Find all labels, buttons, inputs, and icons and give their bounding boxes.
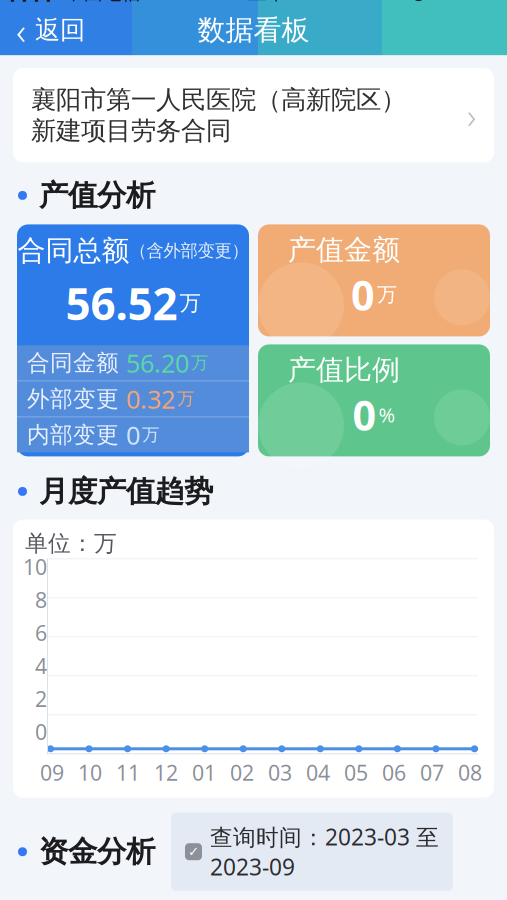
staticText: 数据看板 [197,13,309,47]
staticText: ‹ [16,5,26,55]
staticText: 万 [177,388,194,409]
button[interactable]: 襄阳市第一人民医院（高新院区）新建项目劳务合同 [13,68,494,162]
staticText: 返回 [35,15,85,46]
staticText: 06 [382,758,406,787]
staticText: 查询时间：2023-03 至 2023-09 [210,822,439,882]
staticText: 单位：万 [25,529,117,557]
staticText: 合同金额 [27,349,119,377]
staticText: 56.52 [65,274,177,332]
staticText: 外部变更 [27,385,119,413]
staticText: 4 [35,652,47,680]
staticText: 万 [142,424,159,445]
staticText: 10 [78,758,102,787]
staticText: 月度产值趋势 [39,473,213,509]
staticText: 12 [154,758,178,787]
staticText: ◉ 97% [411,0,466,4]
staticText: 内部变更 [27,421,119,449]
staticText: 上午 10:38 [247,0,339,5]
staticText: 8 [35,586,47,614]
staticText: （含外部变更） [129,240,248,261]
staticText: 0 [119,418,140,452]
staticText: 02 [230,758,254,787]
staticText: 产值分析 [39,177,155,213]
staticText: 08 [458,758,482,787]
staticText: 资金分析 [39,834,155,870]
staticText: 0.32 [119,382,175,416]
staticText: 04 [306,758,330,787]
staticText: 0 [35,718,47,746]
staticText: % [378,401,395,428]
staticText: 6 [35,619,47,647]
staticText: 03 [268,758,292,787]
staticText: 0 [351,267,375,322]
staticText: 56.20 [119,346,189,380]
button[interactable]: ✓ [171,813,453,891]
staticText: 09 [40,758,64,787]
staticText: 01 [192,758,216,787]
staticText: 万 [191,352,208,373]
staticText: 中国电信 4G [59,0,176,5]
staticText: ▎▎▎▎ [11,0,59,1]
staticText: 07 [420,758,444,787]
staticText: 万 [179,290,200,316]
staticText: 2 [35,685,47,713]
staticText: 10 [23,553,47,581]
staticText: 0 [352,387,376,442]
staticText: ✓ [188,844,199,859]
staticText: 产值比例 [288,353,400,387]
staticText: 襄阳市第一人民医院（高新院区）新建项目劳务合同 [31,84,406,146]
staticText: › [467,92,476,138]
staticText: 万 [377,282,397,307]
staticText: 产值金额 [288,233,400,267]
staticText: 11 [116,758,140,787]
staticText: 05 [344,758,368,787]
button[interactable]: ‹ [0,5,101,55]
staticText: 合同总额 [17,233,129,268]
